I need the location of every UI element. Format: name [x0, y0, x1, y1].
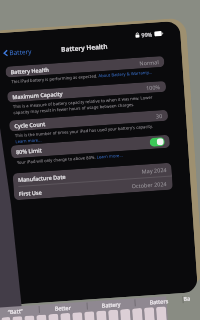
button[interactable]: Cycle Count — [9, 110, 168, 131]
button[interactable]: Battery — [87, 298, 135, 311]
staticText: Battery — [9, 47, 33, 57]
button[interactable]: First Use — [13, 177, 173, 200]
button[interactable] — [84, 311, 96, 320]
button[interactable] — [144, 307, 156, 320]
button[interactable]: 80% Limit — [11, 135, 170, 158]
staticText: Better — [54, 304, 72, 312]
button[interactable]: Manufacture Date — [12, 163, 172, 186]
button[interactable]: Battery — [0, 47, 33, 59]
button[interactable]: Batters — [135, 295, 183, 307]
staticText: Battery Health — [61, 42, 108, 54]
staticText: This iPad battery is performing as expec… — [11, 70, 153, 85]
button[interactable]: Bat — [183, 295, 192, 304]
staticText: Normal — [139, 58, 159, 66]
button[interactable] — [96, 310, 108, 320]
staticText: First Use — [19, 188, 42, 197]
button[interactable] — [72, 312, 84, 320]
button[interactable] — [156, 306, 168, 320]
button[interactable]: “Batt” — [0, 305, 39, 317]
button[interactable] — [120, 309, 132, 320]
button[interactable] — [48, 314, 60, 320]
button[interactable]: Battery Health — [5, 56, 165, 78]
staticText: Maximum Capacity — [12, 90, 63, 100]
staticText: Battery Health — [10, 66, 50, 75]
staticText: May 2024 — [141, 166, 167, 175]
staticText: Your iPad will only charge to above 80%.… — [17, 153, 124, 166]
staticText: Manufacture Date — [18, 173, 66, 183]
staticText: 100% — [146, 83, 161, 91]
staticText: 99% — [141, 31, 153, 38]
staticText: This is the number of times your iPad ha… — [15, 123, 165, 144]
staticText: “Batt” — [8, 307, 23, 315]
button[interactable] — [132, 308, 144, 320]
staticText: October 2024 — [131, 180, 168, 189]
staticText: Bat — [183, 295, 192, 304]
staticText: 30 — [156, 112, 163, 120]
other: 80% Limit toggle — [149, 137, 165, 147]
button[interactable] — [108, 310, 120, 320]
button[interactable] — [24, 315, 36, 320]
button[interactable] — [36, 314, 48, 320]
button[interactable]: Maximum Capacity — [7, 81, 166, 103]
button[interactable]: Better — [39, 302, 87, 314]
button[interactable] — [12, 316, 24, 320]
staticText: This is a measure of battery capacity re… — [13, 94, 163, 115]
staticText: 80% Limit — [16, 146, 42, 155]
staticText: Cycle Count — [14, 120, 46, 129]
button[interactable] — [1, 317, 12, 320]
button[interactable] — [60, 313, 72, 320]
staticText: Batters — [149, 297, 169, 305]
staticText: Battery — [101, 300, 121, 309]
